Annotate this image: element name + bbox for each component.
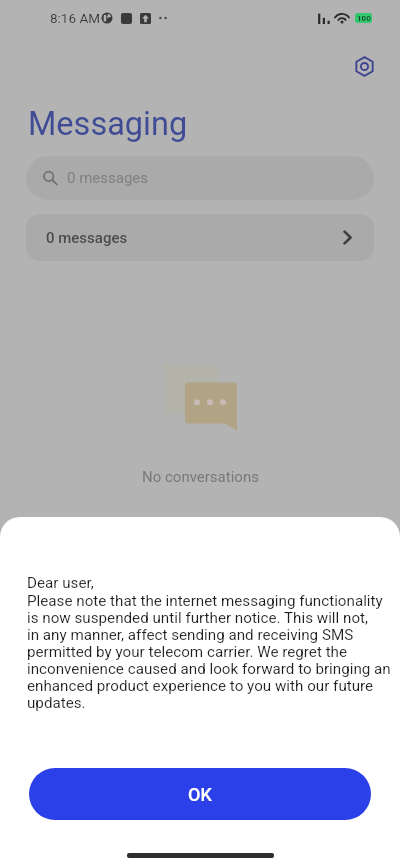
staticText: Dear user, Please note that the internet… — [27, 574, 391, 712]
button[interactable]: 0 messages — [26, 156, 374, 200]
staticText: OK — [188, 784, 212, 805]
staticText: 0 messages — [67, 169, 149, 187]
staticText: No conversations — [142, 468, 259, 486]
staticText: Messaging — [28, 105, 188, 143]
staticText: 100 — [357, 14, 371, 23]
button[interactable]: Settings — [342, 44, 386, 88]
button[interactable]: OK — [29, 768, 371, 820]
staticText: 8:16 AM — [50, 10, 100, 26]
staticText: 0 messages — [46, 229, 128, 247]
button[interactable]: 0 messages — [26, 214, 374, 261]
